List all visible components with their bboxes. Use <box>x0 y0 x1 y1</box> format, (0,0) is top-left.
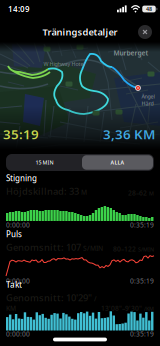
staticText: Höjdskillnad: 33 M <box>6 185 87 197</box>
staticText: 0:00:00 <box>6 277 30 285</box>
staticText: Genomsnitt: 10'29" /KM <box>6 291 97 313</box>
staticText: 35:19 <box>3 125 39 143</box>
staticText: 28–62 M <box>128 188 154 197</box>
staticText: 0:35:19 <box>130 277 154 285</box>
staticText: Takt <box>6 279 22 290</box>
staticText: W Highway Hotel <box>43 60 84 68</box>
staticText: Murberget <box>113 49 148 57</box>
button[interactable]: 15 MIN <box>9 155 80 170</box>
staticText: ALLA <box>110 159 124 166</box>
staticText: Puls <box>6 229 22 239</box>
staticText: Ängel Härd <box>141 93 154 107</box>
staticText: 15 MIN <box>35 159 53 166</box>
staticText: 14:09 <box>8 4 30 14</box>
staticText: 0:00:00 <box>6 221 30 229</box>
button[interactable]: ALLA <box>82 155 153 170</box>
button[interactable]: Close <box>138 25 152 39</box>
staticText: 0:35:19 <box>130 221 154 229</box>
staticText: Stigning <box>6 173 37 183</box>
staticText: 0:35:19 <box>130 330 154 338</box>
staticText: 13'08"–9'30" /KM <box>101 304 154 313</box>
staticText: 0:00:00 <box>6 330 30 338</box>
staticText: 3,36 KM <box>103 125 155 143</box>
staticText: 48 <box>146 5 152 13</box>
staticText: Träningsdetaljer <box>42 26 117 38</box>
staticText: 80–122 S/MIN <box>113 244 154 253</box>
staticText: Genomsnitt: 107 S/MIN <box>6 241 103 253</box>
